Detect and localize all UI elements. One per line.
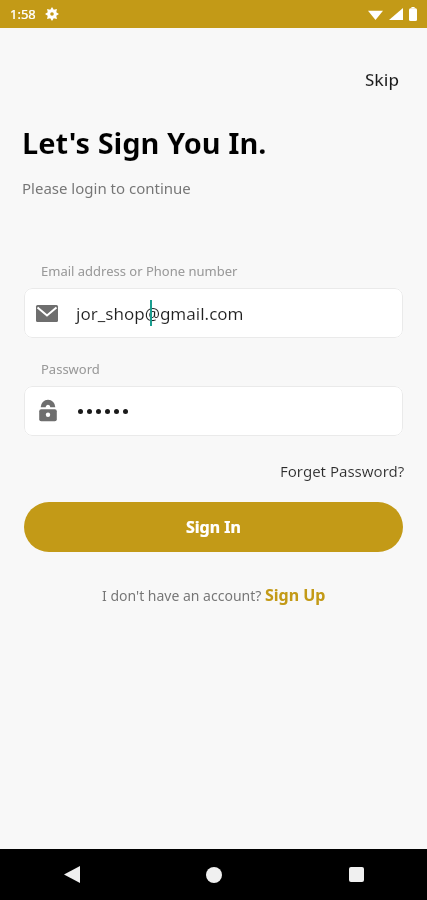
staticText: I don't have an account? bbox=[102, 586, 265, 605]
button[interactable]: Skip bbox=[359, 64, 405, 95]
button[interactable]: Forget Password? bbox=[276, 458, 409, 484]
button[interactable]: Back bbox=[0, 849, 143, 900]
button[interactable]: Sign In bbox=[24, 502, 403, 552]
staticText: jor_shop@gmail.com bbox=[76, 302, 244, 325]
staticText: 1:58 bbox=[10, 5, 36, 23]
staticText: Email address or Phone number bbox=[41, 262, 238, 280]
staticText: Skip bbox=[365, 68, 399, 91]
button[interactable]: Home bbox=[143, 849, 285, 900]
button[interactable]: Recent apps bbox=[285, 849, 427, 900]
staticText: Password bbox=[41, 360, 100, 378]
staticText: Sign In bbox=[186, 516, 241, 538]
staticText: Let's Sign You In. bbox=[22, 123, 267, 162]
button[interactable]: jor_shop@gmail.com bbox=[24, 288, 403, 338]
staticText: Please login to continue bbox=[22, 178, 191, 198]
button[interactable] bbox=[24, 386, 403, 436]
button[interactable]: Sign Up bbox=[265, 584, 326, 606]
staticText: Sign Up bbox=[265, 584, 326, 606]
staticText: Forget Password? bbox=[280, 461, 405, 481]
